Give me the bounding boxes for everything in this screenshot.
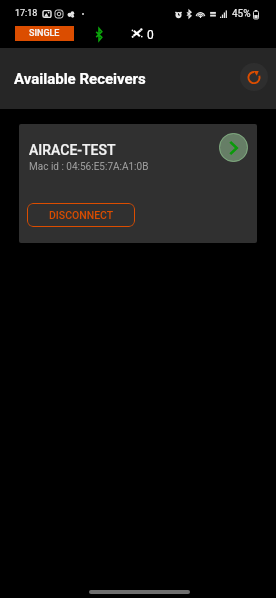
staticText: AIRACE-TEST xyxy=(29,142,116,158)
staticText: 45% xyxy=(232,8,251,20)
button[interactable]: SINGLE xyxy=(15,26,74,41)
button[interactable]: Refresh xyxy=(240,63,268,91)
staticText: 17:18 xyxy=(15,8,38,19)
staticText: Mac id : 04:56:E5:7A:A1:0B xyxy=(29,161,149,173)
button[interactable]: Connect xyxy=(219,133,248,162)
button[interactable]: DISCONNECT xyxy=(27,203,135,227)
button[interactable]: AIRACE-TEST xyxy=(19,124,257,243)
staticText: 0 xyxy=(147,28,154,42)
other: Disconnected xyxy=(131,28,143,39)
staticText: DISCONNECT xyxy=(49,209,114,221)
staticText: Available Receivers xyxy=(14,70,146,88)
other: Bluetooth on xyxy=(95,28,103,41)
staticText: SINGLE xyxy=(29,28,60,39)
